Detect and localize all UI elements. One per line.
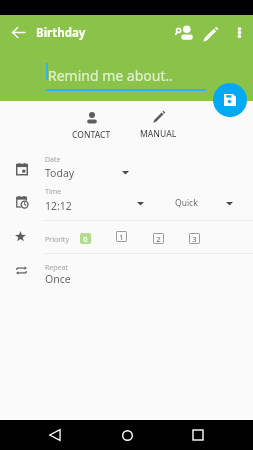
button[interactable]: Back <box>40 420 70 450</box>
staticText: Quick <box>175 197 198 209</box>
staticText: Priority <box>45 235 69 245</box>
button[interactable]: 3 <box>189 233 200 244</box>
staticText: Date <box>45 155 61 165</box>
staticText: Time <box>45 187 62 197</box>
button[interactable]: Recent apps <box>183 420 213 450</box>
staticText: 0 <box>83 234 88 244</box>
staticText: Once <box>45 272 71 286</box>
button[interactable]: CONTACT <box>58 101 125 141</box>
button[interactable]: 1 <box>116 231 127 242</box>
button[interactable]: MANUAL <box>125 101 192 141</box>
button[interactable]: Back <box>0 14 36 50</box>
button[interactable]: Save <box>213 83 247 117</box>
staticText: 12:12 <box>45 199 72 213</box>
staticText: Birthday <box>36 25 86 41</box>
button[interactable]: Edit <box>194 18 226 50</box>
button[interactable]: Home <box>112 420 142 450</box>
staticText: Today <box>45 166 75 180</box>
staticText: 1 <box>119 232 124 242</box>
button[interactable]: Search contact <box>168 17 201 50</box>
button[interactable]: 0 <box>80 233 91 244</box>
staticText: CONTACT <box>72 129 111 141</box>
button[interactable]: Quick <box>166 192 246 214</box>
staticText: MANUAL <box>140 128 177 140</box>
button[interactable]: Choose time <box>129 192 151 214</box>
staticText: 3 <box>192 234 197 244</box>
button[interactable] <box>0 256 253 288</box>
staticText: Repeat <box>45 263 69 273</box>
staticText: Remind me about.. <box>48 66 173 85</box>
button[interactable] <box>0 153 253 185</box>
button[interactable]: Choose date <box>114 161 136 183</box>
staticText: 2 <box>156 234 161 244</box>
button[interactable]: 2 <box>153 233 164 244</box>
button[interactable]: More options <box>226 19 253 46</box>
